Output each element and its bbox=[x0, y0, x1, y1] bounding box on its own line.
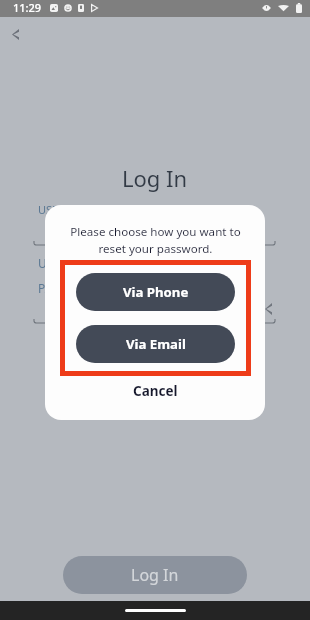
button[interactable]: Toggle password visibility bbox=[256, 297, 280, 321]
button[interactable]: Back bbox=[4, 23, 26, 45]
staticText: Log In bbox=[122, 163, 188, 193]
staticText: Log In bbox=[131, 564, 179, 586]
staticText: USERNAME bbox=[38, 255, 102, 271]
staticText: Please choose how you want to reset your… bbox=[70, 224, 241, 256]
staticText: Cancel bbox=[133, 382, 178, 400]
button[interactable]: Via Phone bbox=[76, 273, 235, 311]
staticText: PASSWORD bbox=[38, 280, 103, 296]
staticText: USERNAME bbox=[38, 202, 97, 217]
staticText: Via Phone bbox=[123, 283, 189, 301]
staticText: Via Email bbox=[126, 335, 186, 353]
button[interactable]: Cancel bbox=[113, 378, 198, 404]
button[interactable]: Via Email bbox=[76, 325, 235, 363]
button[interactable]: Log In bbox=[63, 556, 247, 594]
staticText: 11:29 bbox=[13, 0, 42, 15]
